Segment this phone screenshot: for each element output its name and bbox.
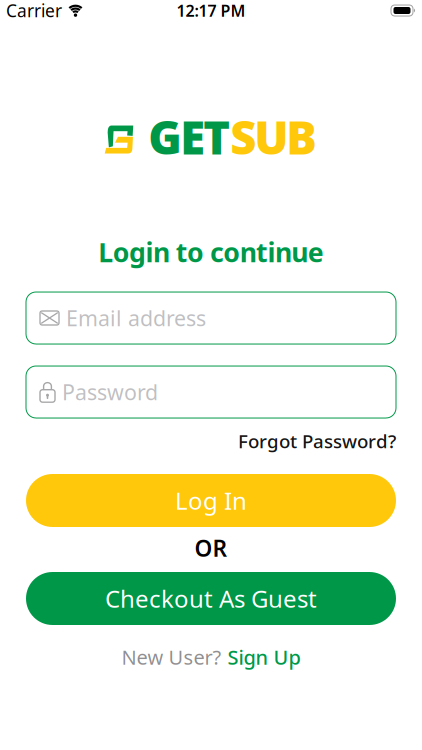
staticText: GET [148,107,230,167]
staticText: Password [62,378,158,406]
staticText: Email address [66,304,206,332]
staticText: Login to continue [98,234,324,270]
staticText: Carrier [6,0,62,22]
staticText: SUB [230,107,317,167]
staticText: Checkout As Guest [105,583,317,614]
staticText: New User? [121,644,221,670]
staticText: Sign Up [227,644,300,670]
button[interactable]: Log In [26,474,396,527]
staticText: Log In [175,485,247,516]
staticText: OR [194,533,227,563]
button[interactable]: Sign Up [227,644,300,670]
staticText: 12:17 PM [176,0,245,21]
button[interactable]: Checkout As Guest [26,572,396,625]
button[interactable]: Password [26,366,396,418]
staticText: Forgot Password? [238,429,396,453]
button[interactable]: Email address [26,292,396,344]
button[interactable]: Forgot Password? [238,429,396,453]
